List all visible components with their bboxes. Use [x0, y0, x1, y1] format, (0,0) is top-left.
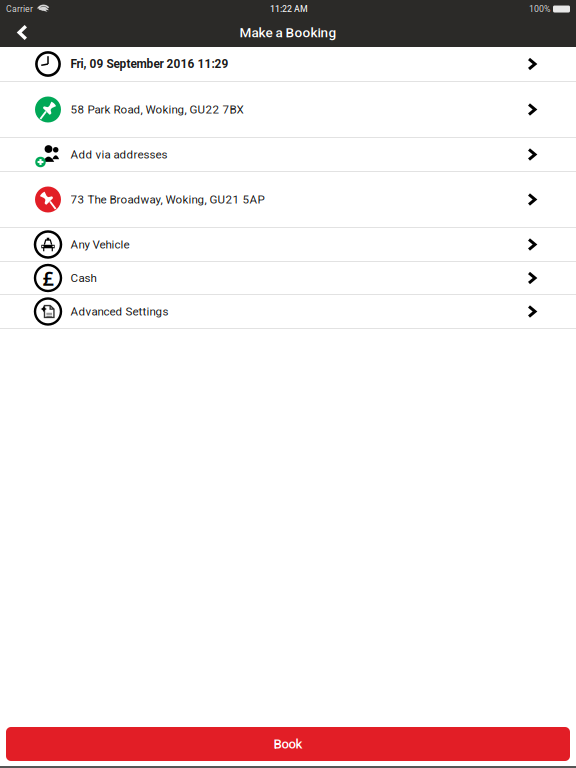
button[interactable]: 58 Park Road, Woking, GU22 7BX — [0, 82, 576, 137]
staticText: Make a Booking — [239, 24, 336, 40]
staticText: Cash — [70, 271, 96, 285]
button[interactable]: £ — [0, 262, 576, 294]
staticText: £ — [42, 265, 53, 291]
button[interactable]: Fri, 09 September 2016 11:29 — [0, 47, 576, 81]
button[interactable]: Advanced Settings — [0, 295, 576, 328]
staticText: 73 The Broadway, Woking, GU21 5AP — [70, 193, 264, 206]
staticText: Any Vehicle — [70, 238, 129, 251]
staticText: 11:22 AM — [270, 4, 308, 14]
staticText: 58 Park Road, Woking, GU22 7BX — [70, 103, 243, 116]
button[interactable]: 73 The Broadway, Woking, GU21 5AP — [0, 172, 576, 227]
button[interactable]: Add via addresses — [0, 138, 576, 171]
button[interactable]: Back — [0, 18, 40, 47]
button[interactable]: Book — [6, 727, 570, 761]
staticText: Fri, 09 September 2016 11:29 — [70, 57, 228, 71]
staticText: Book — [273, 736, 302, 752]
button[interactable]: Any Vehicle — [0, 228, 576, 261]
staticText: Add via addresses — [70, 148, 167, 161]
staticText: 100% — [529, 4, 550, 14]
staticText: Advanced Settings — [70, 305, 168, 318]
staticText: Carrier — [6, 4, 33, 14]
